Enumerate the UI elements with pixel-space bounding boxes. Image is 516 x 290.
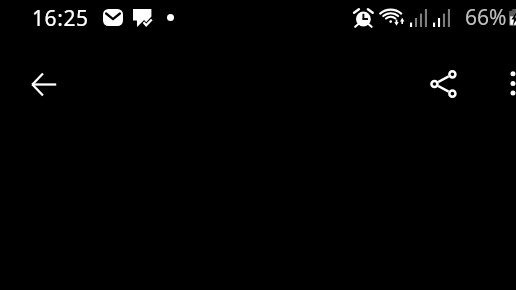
button[interactable]: Navigate up	[20, 61, 67, 108]
button[interactable]: Share	[420, 60, 468, 108]
staticText: 66%	[465, 3, 507, 32]
staticText: 16:25	[32, 4, 89, 33]
button[interactable]: More options	[492, 60, 516, 108]
